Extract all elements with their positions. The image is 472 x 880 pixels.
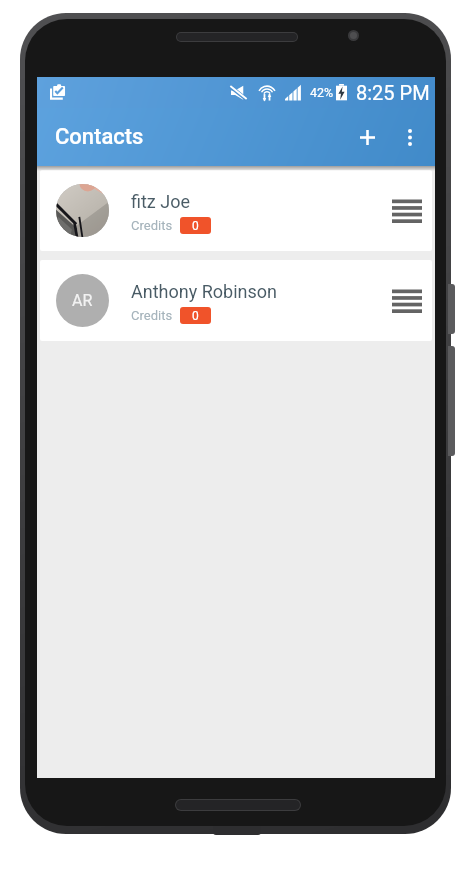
staticText: AR — [72, 291, 93, 310]
button[interactable]: Reorder contact — [382, 276, 432, 326]
staticText: Contacts — [55, 124, 144, 150]
button[interactable]: More options — [390, 117, 430, 157]
staticText: 0 — [192, 309, 199, 323]
staticText: fitz Joe — [131, 191, 191, 212]
staticText: 42% — [310, 85, 334, 100]
button[interactable]: AR — [40, 260, 432, 341]
button[interactable]: Add contact — [344, 114, 390, 160]
staticText: 0 — [192, 219, 199, 233]
button[interactable]: Reorder contact — [382, 186, 432, 236]
staticText: 8:25 PM — [356, 81, 430, 104]
button[interactable]: fitz Joe — [40, 170, 432, 251]
staticText: Anthony Robinson — [131, 281, 277, 302]
staticText: Credits — [131, 218, 173, 233]
staticText: Credits — [131, 308, 173, 323]
